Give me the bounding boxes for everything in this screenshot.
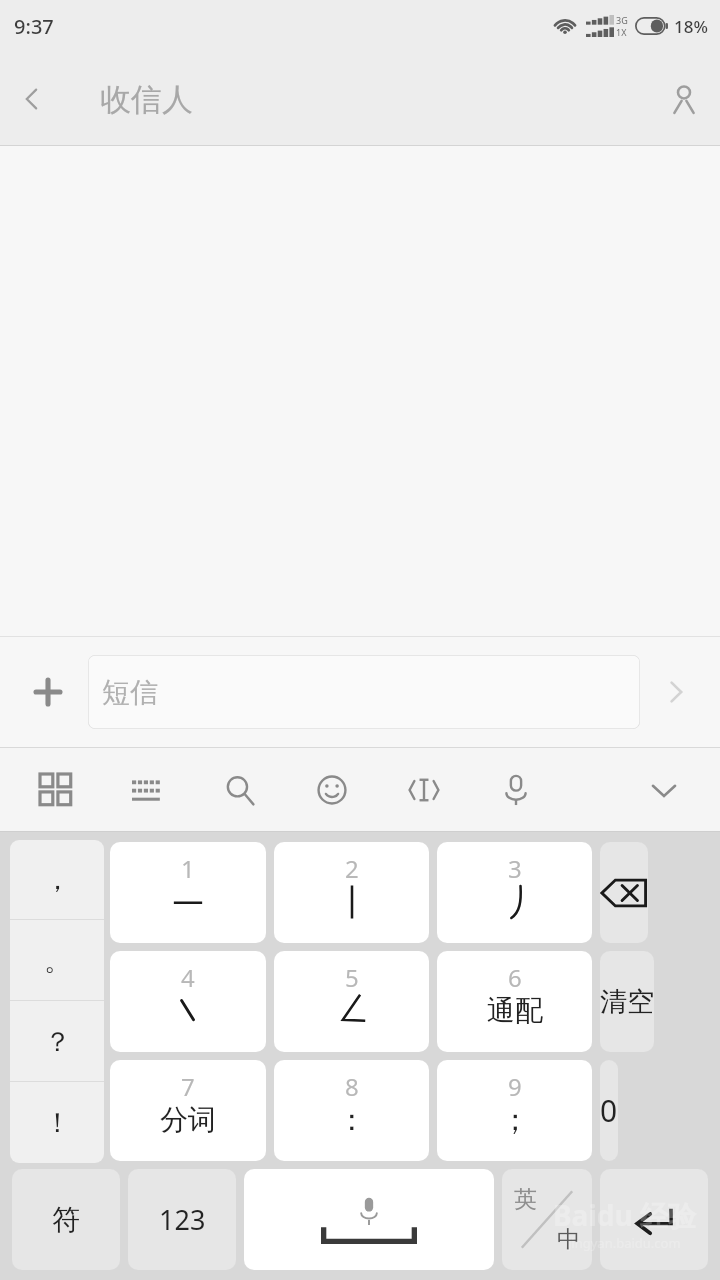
button[interactable]: 2 bbox=[274, 842, 429, 943]
button[interactable]: 清空 bbox=[600, 951, 654, 1052]
button[interactable]: 9 bbox=[437, 1060, 592, 1161]
staticText: 18% bbox=[674, 15, 708, 38]
button[interactable]: ！ bbox=[10, 1082, 104, 1163]
staticText: 123 bbox=[159, 1201, 206, 1238]
staticText: 1 bbox=[181, 852, 195, 885]
staticText: 7 bbox=[181, 1070, 195, 1103]
button[interactable]: Contacts bbox=[648, 63, 720, 135]
staticText: 8 bbox=[345, 1070, 359, 1103]
staticText: 通配 bbox=[487, 993, 543, 1028]
staticText: jingyan.baidu.com bbox=[568, 1234, 681, 1252]
staticText: 1X bbox=[616, 26, 627, 38]
staticText: 清空 bbox=[600, 985, 654, 1019]
button[interactable]: Switch English Chinese bbox=[502, 1169, 592, 1270]
button[interactable]: Enter bbox=[600, 1169, 708, 1270]
button[interactable]: 短信 bbox=[88, 655, 640, 729]
staticText: 2 bbox=[345, 852, 359, 885]
staticText: ？ bbox=[44, 1025, 71, 1059]
button[interactable]: Send bbox=[640, 656, 712, 728]
button[interactable]: 1 bbox=[110, 842, 266, 943]
button[interactable]: 3 bbox=[437, 842, 592, 943]
staticText: 短信 bbox=[102, 675, 158, 710]
staticText: ； bbox=[500, 1101, 530, 1139]
button[interactable]: 6 bbox=[437, 951, 592, 1052]
staticText: 符 bbox=[52, 1202, 80, 1237]
staticText: 9:37 bbox=[14, 13, 54, 40]
button[interactable]: Backspace bbox=[600, 842, 648, 943]
staticText: 5 bbox=[345, 961, 359, 994]
button[interactable]: Keyboard settings bbox=[120, 762, 176, 818]
button[interactable]: 4 bbox=[110, 951, 266, 1052]
staticText: ！ bbox=[44, 1106, 71, 1140]
staticText: 3G bbox=[616, 14, 628, 26]
button[interactable]: 5 bbox=[274, 951, 429, 1052]
staticText: 英 bbox=[514, 1185, 537, 1214]
button[interactable]: 7 bbox=[110, 1060, 266, 1161]
staticText: 中 bbox=[557, 1225, 580, 1254]
staticText: 收信人 bbox=[100, 80, 193, 119]
staticText: 6 bbox=[508, 961, 522, 994]
button[interactable]: Add attachment bbox=[8, 652, 88, 732]
staticText: 分词 bbox=[160, 1102, 216, 1137]
button[interactable]: Edit cursor bbox=[396, 762, 452, 818]
button[interactable]: Hide keyboard bbox=[628, 754, 700, 826]
button[interactable]: 。 bbox=[10, 920, 104, 1001]
button[interactable]: Back bbox=[0, 67, 64, 131]
staticText: Baidu 经验 bbox=[553, 1196, 696, 1234]
button[interactable]: 8 bbox=[274, 1060, 429, 1161]
button[interactable]: 符 bbox=[12, 1169, 120, 1270]
button[interactable]: 123 bbox=[128, 1169, 236, 1270]
button[interactable]: Space / voice input bbox=[244, 1169, 494, 1270]
button[interactable]: 0 bbox=[600, 1060, 618, 1161]
staticText: 。 bbox=[44, 944, 71, 978]
button[interactable]: Voice input bbox=[488, 762, 544, 818]
button[interactable]: Emoji bbox=[304, 762, 360, 818]
button[interactable]: Keyboard layouts bbox=[28, 762, 84, 818]
staticText: ： bbox=[337, 1101, 367, 1139]
staticText: ， bbox=[44, 863, 71, 897]
button[interactable]: ， bbox=[10, 840, 104, 920]
button[interactable]: Search bbox=[212, 762, 268, 818]
staticText: 3 bbox=[508, 852, 522, 885]
staticText: 4 bbox=[181, 961, 195, 994]
button[interactable]: ？ bbox=[10, 1001, 104, 1082]
staticText: 0 bbox=[600, 1090, 618, 1131]
staticText: 9 bbox=[508, 1070, 522, 1103]
